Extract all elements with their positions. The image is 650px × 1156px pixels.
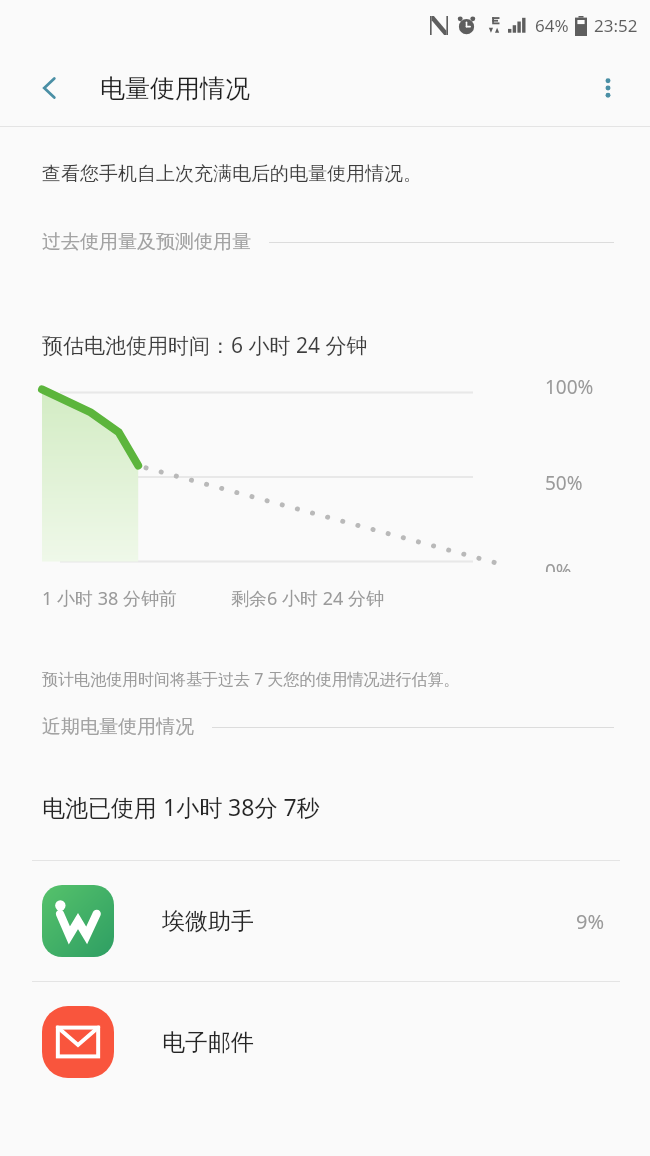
button[interactable]: More options (580, 60, 636, 116)
button[interactable]: 埃微助手 (0, 861, 650, 981)
staticText: 1 小时 38 分钟前 (42, 586, 177, 611)
staticText: 近期电量使用情况 (42, 715, 194, 739)
staticText: 查看您手机自上次充满电后的电量使用情况。 (42, 162, 422, 186)
staticText: 23:52 (594, 14, 638, 37)
staticText: 预估电池使用时间：6 小时 24 分钟 (42, 331, 368, 360)
staticText: 过去使用量及预测使用量 (42, 230, 251, 254)
staticText: 100% (545, 374, 594, 400)
staticText: 0% (545, 558, 572, 572)
staticText: 9% (576, 908, 605, 935)
button[interactable]: 电子邮件 (0, 982, 650, 1102)
staticText: 埃微助手 (162, 907, 254, 936)
staticText: 电子邮件 (162, 1028, 254, 1057)
button[interactable]: Back (22, 60, 78, 116)
staticText: 预计电池使用时间将基于过去 7 天您的使用情况进行估算。 (42, 668, 460, 690)
staticText: 电池已使用 1小时 38分 7秒 (42, 791, 320, 822)
staticText: 64% (535, 14, 569, 37)
staticText: 剩余6 小时 24 分钟 (231, 586, 384, 611)
staticText: 50% (545, 470, 583, 496)
staticText: 电量使用情况 (100, 73, 250, 104)
